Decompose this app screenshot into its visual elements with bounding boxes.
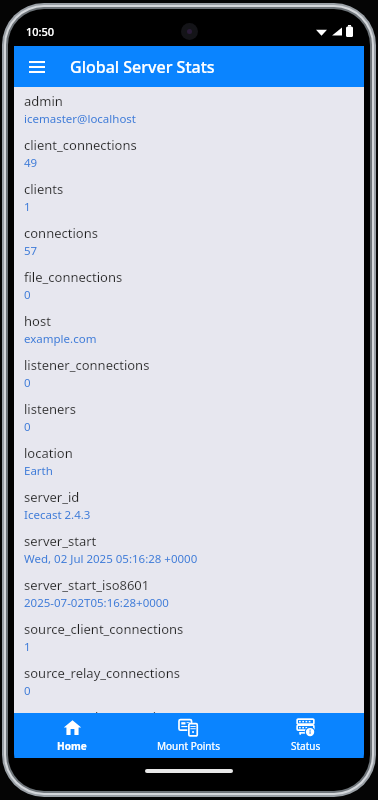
staticText: admin	[24, 92, 63, 110]
staticText: source_total_connections	[24, 708, 179, 713]
button[interactable]: admin	[14, 87, 364, 127]
button[interactable]: file_connections	[14, 263, 364, 303]
staticText: clients	[24, 180, 64, 198]
button[interactable]: source_total_connections	[14, 703, 364, 713]
staticText: Wed, 02 Jul 2025 05:16:28 +0000	[24, 551, 198, 567]
button[interactable]: clients	[14, 175, 364, 215]
staticText: 0	[24, 683, 31, 699]
button[interactable]: server_id	[14, 483, 364, 523]
staticText: server_id	[24, 488, 80, 506]
staticText: example.com	[24, 331, 97, 347]
staticText: source_relay_connections	[24, 664, 180, 682]
staticText: Home	[57, 739, 87, 753]
button[interactable]: server_start_iso8601	[14, 571, 364, 611]
button[interactable]: Status	[247, 714, 364, 757]
button[interactable]: listeners	[14, 395, 364, 435]
staticText: Global Server Stats	[70, 56, 215, 78]
button[interactable]: source_relay_connections	[14, 659, 364, 699]
button[interactable]: connections	[14, 219, 364, 259]
staticText: listeners	[24, 400, 76, 418]
staticText: 10:50	[26, 24, 55, 39]
staticText: 57	[24, 243, 38, 259]
staticText: client_connections	[24, 136, 137, 154]
staticText: host	[24, 312, 51, 330]
staticText: 0	[24, 419, 31, 435]
staticText: 1	[24, 639, 31, 655]
button[interactable]: listener_connections	[14, 351, 364, 391]
staticText: Earth	[24, 463, 53, 479]
button[interactable]: Home	[14, 714, 130, 757]
button[interactable]: Mount Points	[130, 714, 247, 757]
staticText: Icecast 2.4.3	[24, 507, 91, 523]
button[interactable]: source_client_connections	[14, 615, 364, 655]
staticText: connections	[24, 224, 98, 242]
staticText: listener_connections	[24, 356, 150, 374]
staticText: file_connections	[24, 268, 123, 286]
staticText: 49	[24, 155, 38, 171]
staticText: 1	[24, 199, 31, 215]
staticText: icemaster@localhost	[24, 111, 136, 127]
staticText: Mount Points	[157, 739, 220, 753]
staticText: 2025-07-02T05:16:28+0000	[24, 595, 169, 611]
staticText: 0	[24, 287, 31, 303]
staticText: server_start_iso8601	[24, 576, 150, 594]
staticText: Status	[291, 739, 321, 753]
staticText: server_start	[24, 532, 97, 550]
button[interactable]: host	[14, 307, 364, 347]
button[interactable]: location	[14, 439, 364, 479]
button[interactable]: client_connections	[14, 131, 364, 171]
staticText: source_client_connections	[24, 620, 184, 638]
staticText: 0	[24, 375, 31, 391]
staticText: location	[24, 444, 73, 462]
button[interactable]: Open navigation menu	[18, 48, 56, 86]
button[interactable]: server_start	[14, 527, 364, 567]
